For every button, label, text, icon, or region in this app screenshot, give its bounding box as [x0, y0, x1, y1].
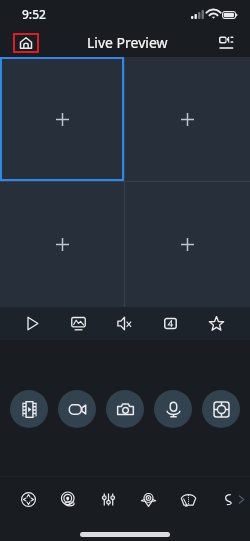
button[interactable]: Spotlight — [128, 476, 168, 522]
button[interactable]: Add camera — [0, 182, 124, 307]
staticText: 9:52 — [22, 6, 46, 22]
button[interactable]: Play — [16, 307, 49, 340]
button[interactable]: Image settings — [88, 476, 128, 522]
button[interactable]: Snapshot — [62, 307, 95, 340]
button[interactable]: Channels — [154, 307, 187, 340]
button[interactable]: PTZ preset — [202, 390, 240, 428]
button[interactable]: Zoom — [48, 476, 88, 522]
button[interactable]: Add camera — [125, 182, 250, 307]
button[interactable]: Wiper — [168, 476, 208, 522]
staticText: Live Preview — [87, 33, 168, 52]
button[interactable]: Add camera — [125, 57, 250, 181]
button[interactable]: Mute — [108, 307, 141, 340]
button[interactable]: Video — [58, 390, 96, 428]
button[interactable]: Home — [13, 33, 39, 53]
button[interactable]: Add camera — [0, 57, 124, 181]
button[interactable]: Cast — [213, 29, 239, 55]
button[interactable]: Favorite — [200, 307, 233, 340]
button[interactable]: More — [208, 476, 248, 522]
button[interactable]: Microphone — [154, 390, 192, 428]
button[interactable]: PTZ control — [8, 476, 48, 522]
button[interactable]: More options — [232, 490, 250, 508]
button[interactable]: Photo — [106, 390, 144, 428]
button[interactable]: Recordings — [10, 390, 48, 428]
